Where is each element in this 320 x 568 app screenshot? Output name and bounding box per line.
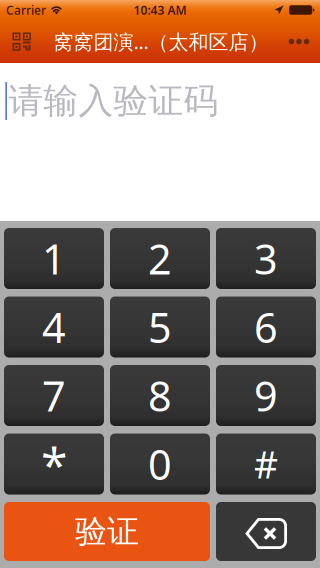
button[interactable]: 9 (216, 365, 316, 426)
button[interactable]: 验证 (4, 502, 210, 561)
staticText: # (254, 439, 278, 489)
button[interactable]: 8 (110, 365, 210, 426)
button[interactable]: 0 (110, 433, 210, 494)
button[interactable]: # (216, 433, 316, 494)
staticText: 验证 (75, 512, 139, 551)
staticText: 3 (254, 231, 278, 286)
staticText: 6 (254, 300, 278, 354)
staticText: 窝窝团演...（太和区店） (53, 28, 268, 55)
button[interactable]: 5 (110, 296, 210, 357)
button[interactable]: Delete (216, 502, 316, 561)
staticText: 10:43 AM (133, 2, 186, 18)
staticText: 7 (42, 368, 66, 423)
button[interactable]: More (276, 20, 320, 63)
staticText: 8 (148, 368, 172, 423)
staticText: 5 (148, 300, 172, 354)
button[interactable]: 3 (216, 228, 316, 289)
button[interactable]: Scan QR code (0, 20, 53, 63)
button[interactable]: 7 (4, 365, 104, 426)
button[interactable]: 6 (216, 296, 316, 357)
button[interactable]: 1 (4, 228, 104, 289)
staticText: 0 (148, 437, 172, 491)
staticText: 2 (148, 231, 172, 286)
staticText: Carrier (6, 2, 46, 18)
button[interactable]: * (4, 433, 104, 494)
staticText: * (41, 432, 67, 496)
button[interactable]: 2 (110, 228, 210, 289)
button[interactable]: 4 (4, 296, 104, 357)
staticText: 请输入验证码 (8, 80, 218, 122)
staticText: 9 (254, 368, 278, 423)
staticText: 4 (42, 300, 66, 354)
staticText: 1 (42, 231, 66, 286)
